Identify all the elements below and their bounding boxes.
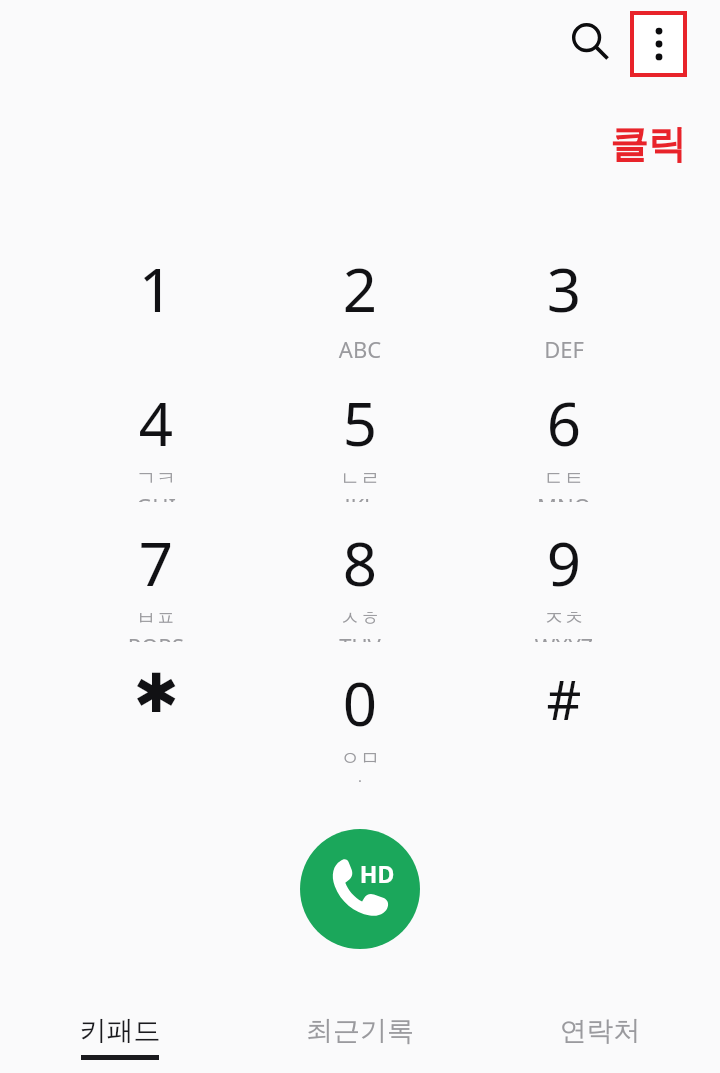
staticText: GHI [66, 491, 246, 502]
button[interactable]: 키패드 [0, 1000, 240, 1073]
staticText: 6 [474, 382, 654, 464]
staticText: 5 [270, 382, 450, 464]
staticText: WXYZ [474, 631, 654, 642]
staticText: ㅈㅊ [474, 606, 654, 631]
staticText: TUV [270, 631, 450, 642]
staticText: HD [354, 858, 400, 889]
staticText: MNO [474, 491, 654, 502]
staticText: JKL [270, 491, 450, 502]
button[interactable]: 7 [66, 518, 246, 642]
staticText: ✱ [66, 662, 246, 725]
staticText: 7 [66, 522, 246, 604]
button[interactable]: 6 [474, 378, 654, 502]
button[interactable]: 1 [66, 244, 246, 368]
button[interactable]: 5 [270, 378, 450, 502]
staticText: 4 [66, 382, 246, 464]
staticText: DEF [474, 334, 654, 364]
staticText: PQRS [66, 631, 246, 642]
button[interactable]: Call [300, 829, 420, 949]
staticText: ㅇㅁ [270, 746, 450, 771]
staticText: 최근기록 [260, 1014, 460, 1048]
staticText: 2 [270, 248, 450, 330]
button[interactable]: 연락처 [480, 1000, 720, 1073]
button[interactable]: 2 [270, 244, 450, 368]
button[interactable]: 최근기록 [240, 1000, 480, 1073]
staticText: ㄱㅋ [66, 466, 246, 491]
staticText: ㅅㅎ [270, 606, 450, 631]
staticText: ABC [270, 334, 450, 364]
button[interactable]: ✱ [66, 658, 246, 782]
staticText: 연락처 [500, 1014, 700, 1048]
staticText: 9 [474, 522, 654, 604]
staticText: 8 [270, 522, 450, 604]
button[interactable]: 4 [66, 378, 246, 502]
staticText: 0 [270, 662, 450, 744]
button[interactable]: 8 [270, 518, 450, 642]
button[interactable]: # [474, 658, 654, 782]
staticText: 3 [474, 248, 654, 330]
button[interactable]: More options [630, 11, 687, 77]
staticText: 클릭 [600, 120, 696, 166]
staticText: ㅂㅍ [66, 606, 246, 631]
button[interactable]: 9 [474, 518, 654, 642]
button[interactable]: 3 [474, 244, 654, 368]
staticText: # [474, 662, 654, 736]
staticText: ㄴㄹ [270, 466, 450, 491]
button[interactable]: Search [563, 14, 617, 68]
staticText: ㄷㅌ [474, 466, 654, 491]
button[interactable]: 0 [270, 658, 450, 782]
staticText: 1 [66, 248, 246, 330]
staticText: 키패드 [20, 1014, 220, 1048]
